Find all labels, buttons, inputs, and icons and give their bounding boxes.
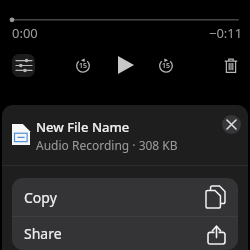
staticText: 15 (79, 61, 88, 71)
staticText: Share (24, 224, 62, 243)
button[interactable]: Delete (220, 54, 242, 76)
button[interactable]: Forward 15 seconds (155, 54, 177, 76)
button[interactable]: Playback speed settings (12, 54, 35, 77)
button[interactable]: Close (222, 115, 241, 134)
staticText: New File Name (36, 118, 130, 136)
staticText: Copy (24, 188, 57, 207)
staticText: 0:00 (12, 24, 38, 42)
button[interactable]: Copy (12, 178, 238, 216)
staticText: Audio Recording · 308 KB (36, 137, 178, 153)
button[interactable]: Share (12, 217, 238, 250)
staticText: 15 (162, 61, 171, 71)
staticText: −0:11 (209, 24, 243, 42)
button[interactable]: Play (115, 54, 137, 76)
button[interactable]: Rewind 15 seconds (72, 54, 94, 76)
